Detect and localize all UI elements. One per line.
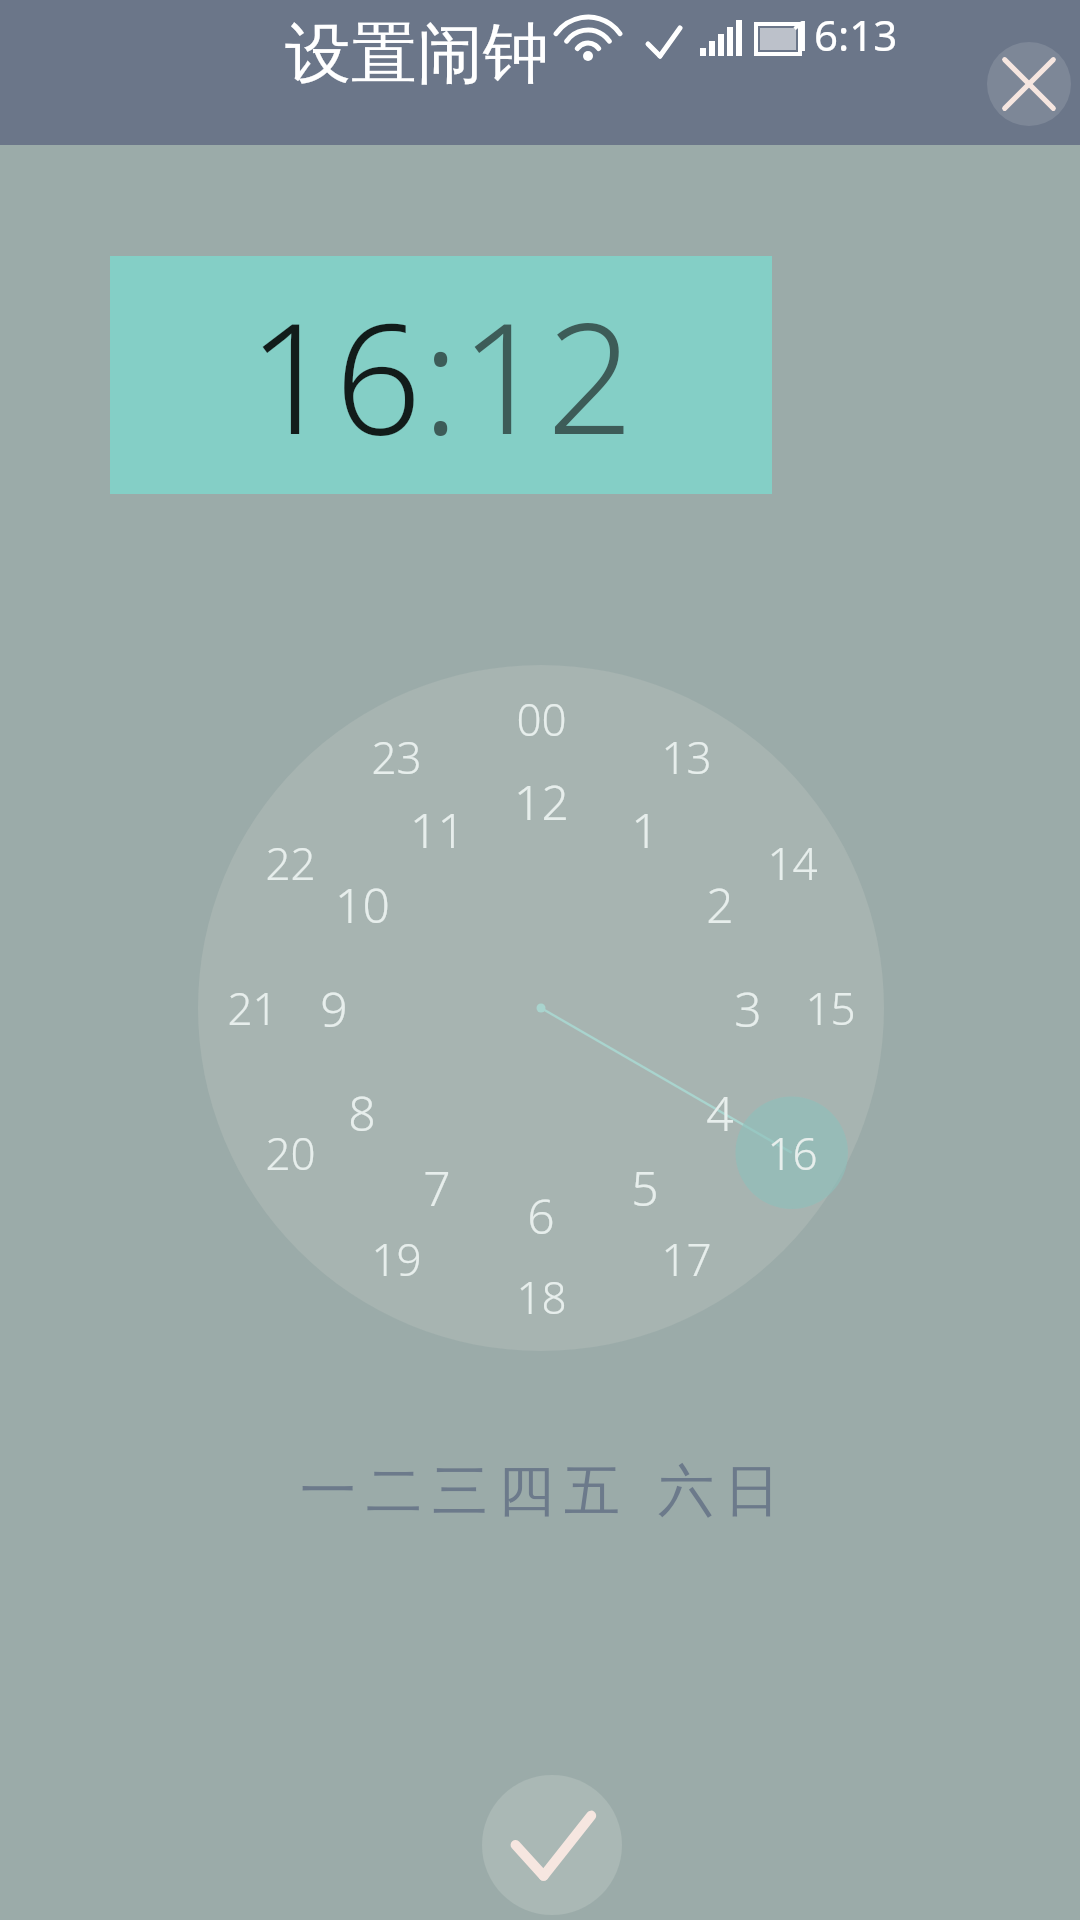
staticText: 四 — [498, 1456, 554, 1527]
staticText: 二 — [366, 1456, 422, 1527]
button[interactable]: 16 — [110, 256, 772, 494]
staticText: 00 — [516, 689, 567, 749]
staticText: 22 — [265, 833, 316, 893]
staticText: 7 — [423, 1155, 451, 1220]
staticText: 14 — [767, 833, 818, 893]
staticText: 10 — [335, 872, 390, 937]
button[interactable]: 6 — [499, 1181, 583, 1249]
staticText: : — [422, 272, 460, 479]
button[interactable]: Confirm — [482, 1775, 622, 1915]
staticText: 3 — [734, 976, 762, 1041]
staticText: 6 — [527, 1183, 555, 1248]
button[interactable]: 20 — [248, 1119, 332, 1187]
staticText: 2 — [706, 872, 734, 937]
button[interactable]: 16 — [248, 272, 422, 479]
button[interactable]: 7 — [395, 1153, 479, 1221]
button[interactable]: 一 — [295, 1448, 361, 1534]
staticText: 六 — [658, 1456, 714, 1527]
staticText: 18 — [516, 1267, 567, 1327]
staticText: 日 — [724, 1456, 780, 1527]
staticText: 9 — [320, 976, 348, 1041]
button[interactable]: 三 — [427, 1448, 493, 1534]
button[interactable]: 22 — [248, 829, 332, 897]
button[interactable]: 13 — [644, 723, 728, 791]
staticText: 5 — [631, 1155, 659, 1220]
button[interactable]: 12 — [460, 272, 634, 479]
button[interactable]: 4 — [678, 1078, 762, 1146]
button[interactable]: 00 — [499, 685, 583, 753]
staticText: 23 — [371, 727, 422, 787]
staticText: 19 — [371, 1229, 422, 1289]
staticText: 21 — [227, 978, 278, 1038]
button[interactable]: 五 — [559, 1448, 625, 1534]
button[interactable]: 9 — [292, 974, 376, 1042]
button[interactable]: 15 — [788, 974, 872, 1042]
button[interactable]: 18 — [499, 1263, 583, 1331]
staticText: 设置闹钟 — [285, 12, 549, 95]
staticText: 20 — [265, 1123, 316, 1183]
button[interactable]: 16 — [750, 1119, 834, 1187]
button[interactable]: 23 — [354, 723, 438, 791]
staticText: 13 — [661, 727, 712, 787]
staticText: 五 — [564, 1456, 620, 1527]
button[interactable]: 四 — [493, 1448, 559, 1534]
button[interactable]: 六 — [653, 1448, 719, 1534]
button[interactable]: 日 — [719, 1448, 785, 1534]
button[interactable]: 5 — [603, 1153, 687, 1221]
button[interactable]: 14 — [750, 829, 834, 897]
staticText: 12 — [514, 769, 569, 834]
staticText: 一 — [300, 1456, 356, 1527]
button[interactable]: 11 — [395, 795, 479, 863]
button[interactable]: 19 — [354, 1225, 438, 1293]
staticText: 17 — [661, 1229, 712, 1289]
button[interactable]: 8 — [320, 1078, 404, 1146]
staticText: 4 — [706, 1080, 734, 1145]
staticText: 11 — [410, 797, 465, 862]
button[interactable]: 00 — [198, 665, 884, 1351]
button[interactable]: 17 — [644, 1225, 728, 1293]
button[interactable]: 2 — [678, 870, 762, 938]
staticText: 15 — [805, 978, 856, 1038]
button[interactable]: 3 — [706, 974, 790, 1042]
staticText: 三 — [432, 1456, 488, 1527]
staticText: 16:13 — [790, 6, 898, 63]
button[interactable]: 1 — [603, 795, 687, 863]
staticText: 1 — [631, 797, 659, 862]
button[interactable]: 21 — [210, 974, 294, 1042]
button[interactable]: 二 — [361, 1448, 427, 1534]
button[interactable]: 10 — [320, 870, 404, 938]
staticText: 16 — [767, 1123, 818, 1183]
staticText: 8 — [348, 1080, 376, 1145]
button[interactable]: Close — [987, 42, 1071, 126]
button[interactable]: 12 — [499, 767, 583, 835]
